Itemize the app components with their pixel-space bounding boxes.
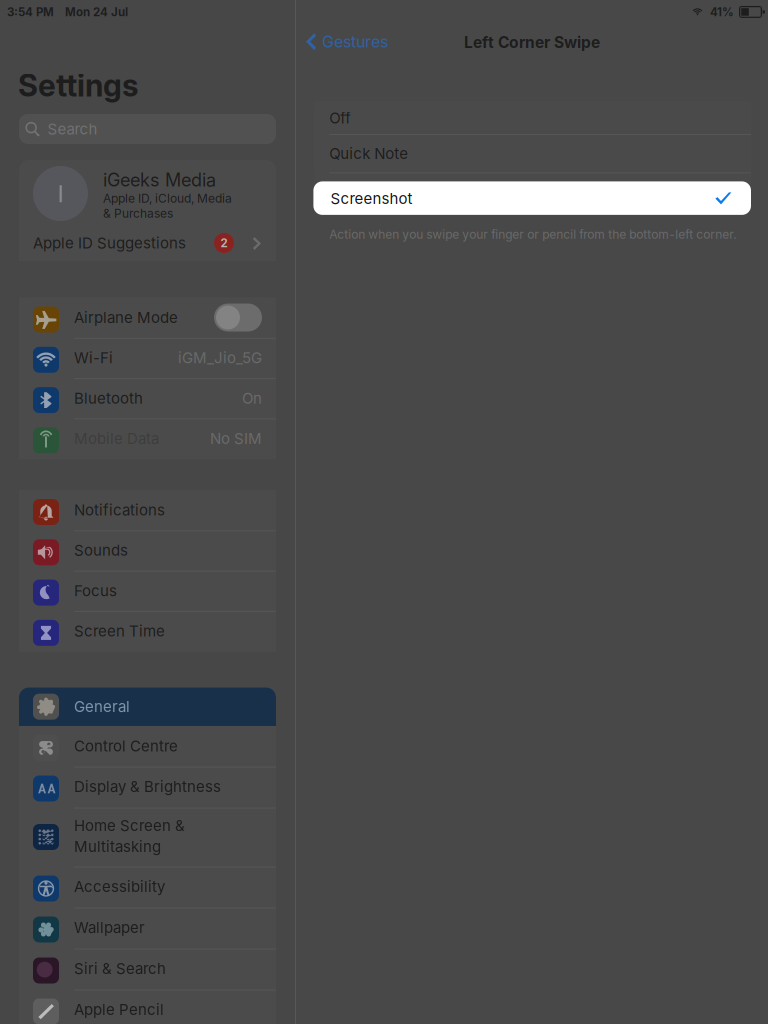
- button[interactable]: Airplane Mode: [19, 297, 276, 338]
- button[interactable]: Wallpaper: [19, 907, 276, 948]
- staticText: Mon 24 Jul: [65, 5, 128, 19]
- staticText: Bluetooth: [74, 389, 143, 407]
- staticText: Focus: [74, 582, 117, 600]
- button[interactable]: Control Centre: [19, 726, 276, 767]
- staticText: Sounds: [74, 541, 128, 559]
- staticText: iGeeks Media: [103, 169, 216, 191]
- staticText: Off: [329, 109, 351, 127]
- staticText: Apple ID, iCloud, Media: [103, 191, 232, 205]
- button[interactable]: Wi-Fi: [19, 338, 276, 379]
- staticText: On: [242, 389, 262, 407]
- button[interactable]: Focus: [19, 571, 276, 611]
- staticText: 2: [220, 236, 227, 250]
- button[interactable]: Siri & Search: [19, 948, 276, 989]
- button[interactable]: Home Screen &: [19, 807, 276, 866]
- staticText: Siri & Search: [74, 959, 166, 978]
- staticText: Left Corner Swipe: [464, 33, 600, 52]
- button[interactable]: General: [19, 687, 276, 726]
- staticText: Apple ID Suggestions: [33, 234, 186, 252]
- staticText: Wi-Fi: [74, 349, 113, 367]
- staticText: Home Screen &: [74, 816, 185, 835]
- staticText: Settings: [18, 67, 138, 104]
- staticText: Apple Pencil: [74, 1000, 164, 1019]
- staticText: General: [74, 697, 130, 716]
- staticText: Screen Time: [74, 622, 165, 640]
- staticText: Control Centre: [74, 737, 178, 755]
- staticText: Search: [47, 120, 97, 138]
- staticText: I: [57, 179, 63, 208]
- staticText: Quick Note: [329, 144, 408, 163]
- button[interactable]: Mobile Data: [19, 418, 276, 459]
- button[interactable]: Apple ID Suggestions: [19, 226, 276, 261]
- button[interactable]: Screen Time: [19, 611, 276, 652]
- staticText: Display & Brightness: [74, 777, 221, 796]
- button[interactable]: Notifications: [19, 490, 276, 531]
- staticText: iGM_Jio_5G: [178, 349, 262, 367]
- button[interactable]: Screenshot: [313, 181, 751, 215]
- staticText: Gestures: [322, 32, 388, 51]
- staticText: Action when you swipe your finger or pen…: [329, 227, 736, 241]
- staticText: Notifications: [74, 501, 165, 519]
- staticText: No SIM: [210, 429, 262, 447]
- button[interactable]: Apple Pencil: [19, 989, 276, 1024]
- button[interactable]: Accessibility: [19, 866, 276, 907]
- staticText: 41%: [710, 5, 734, 19]
- button[interactable]: Display & Brightness: [19, 766, 276, 807]
- button[interactable]: Sounds: [19, 530, 276, 571]
- staticText: 3:54 PM: [7, 5, 54, 19]
- staticText: Wallpaper: [74, 918, 145, 937]
- staticText: & Purchases: [103, 206, 173, 220]
- button[interactable]: Gestures: [306, 32, 388, 51]
- staticText: Multitasking: [74, 837, 161, 856]
- button[interactable]: Quick Note: [315, 134, 751, 172]
- staticText: Airplane Mode: [74, 308, 178, 327]
- staticText: Mobile Data: [74, 429, 159, 447]
- button[interactable]: Bluetooth: [19, 378, 276, 419]
- staticText: Accessibility: [74, 877, 165, 896]
- staticText: Screenshot: [330, 189, 412, 207]
